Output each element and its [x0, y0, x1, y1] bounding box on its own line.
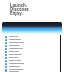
- button[interactable]: [0, 56, 64, 59]
- button[interactable]: [2, 22, 62, 34]
- button[interactable]: [0, 68, 64, 71]
- button[interactable]: [0, 71, 64, 72]
- button[interactable]: [0, 44, 64, 47]
- button[interactable]: [0, 41, 64, 44]
- staticText: Launch. Discover. Enjoy.: [10, 2, 30, 17]
- button[interactable]: [0, 62, 64, 65]
- button[interactable]: [0, 50, 64, 53]
- button[interactable]: [0, 59, 64, 62]
- button[interactable]: [0, 65, 64, 68]
- button[interactable]: [0, 38, 64, 41]
- button[interactable]: [0, 35, 64, 38]
- button[interactable]: [0, 53, 64, 56]
- button[interactable]: [0, 47, 64, 50]
